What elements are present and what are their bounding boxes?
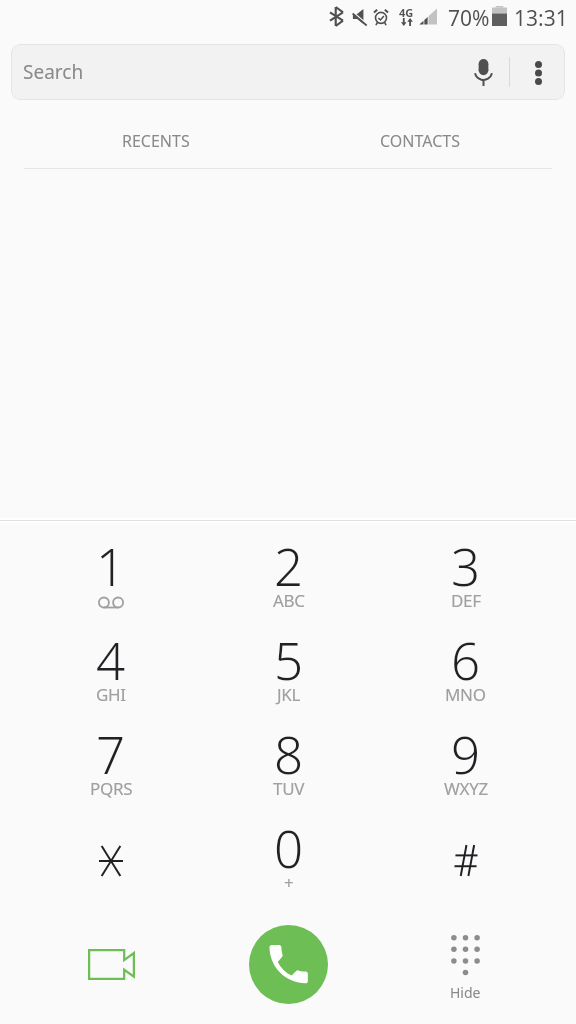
- staticText: DEF: [451, 589, 481, 612]
- staticText: WXYZ: [444, 777, 488, 800]
- staticText: 9: [451, 719, 481, 788]
- staticText: 1: [96, 531, 126, 600]
- staticText: 8: [274, 719, 304, 788]
- staticText: GHI: [96, 683, 126, 706]
- button[interactable]: Video call: [22, 905, 200, 1021]
- button[interactable]: Voice search: [461, 45, 505, 100]
- staticText: 4: [96, 625, 126, 694]
- button[interactable]: Pound: [377, 811, 554, 905]
- button[interactable]: 3: [377, 529, 554, 623]
- staticText: TUV: [273, 777, 305, 800]
- button[interactable]: Hide keypad: [377, 905, 554, 1021]
- button[interactable]: 7: [22, 717, 200, 811]
- staticText: 2: [274, 531, 304, 600]
- staticText: ABC: [273, 589, 305, 612]
- button[interactable]: 0: [200, 811, 377, 905]
- button[interactable]: Call: [249, 925, 328, 1004]
- staticText: CONTACTS: [380, 130, 460, 152]
- staticText: 4G: [399, 5, 414, 20]
- staticText: 13:31: [514, 4, 568, 33]
- staticText: 70%: [448, 4, 490, 33]
- staticText: 5: [274, 625, 304, 694]
- staticText: RECENTS: [122, 130, 190, 152]
- button[interactable]: Star: [22, 811, 200, 905]
- staticText: Search: [23, 59, 84, 85]
- staticText: JKL: [277, 683, 301, 706]
- button[interactable]: 5: [200, 623, 377, 717]
- staticText: 0: [274, 813, 304, 882]
- staticText: 6: [451, 625, 481, 694]
- button[interactable]: 1: [22, 529, 200, 623]
- staticText: Hide: [450, 983, 481, 1002]
- button[interactable]: 2: [200, 529, 377, 623]
- staticText: PQRS: [90, 777, 133, 800]
- button[interactable]: Search: [11, 44, 565, 100]
- staticText: MNO: [445, 683, 486, 706]
- button[interactable]: More options: [516, 45, 560, 100]
- staticText: +: [284, 871, 294, 894]
- staticText: 3: [451, 531, 481, 600]
- button[interactable]: 9: [377, 717, 554, 811]
- button[interactable]: 4: [22, 623, 200, 717]
- staticText: 7: [96, 719, 126, 788]
- button[interactable]: 6: [377, 623, 554, 717]
- button[interactable]: RECENTS: [24, 100, 288, 168]
- button[interactable]: 8: [200, 717, 377, 811]
- button[interactable]: CONTACTS: [288, 100, 552, 168]
